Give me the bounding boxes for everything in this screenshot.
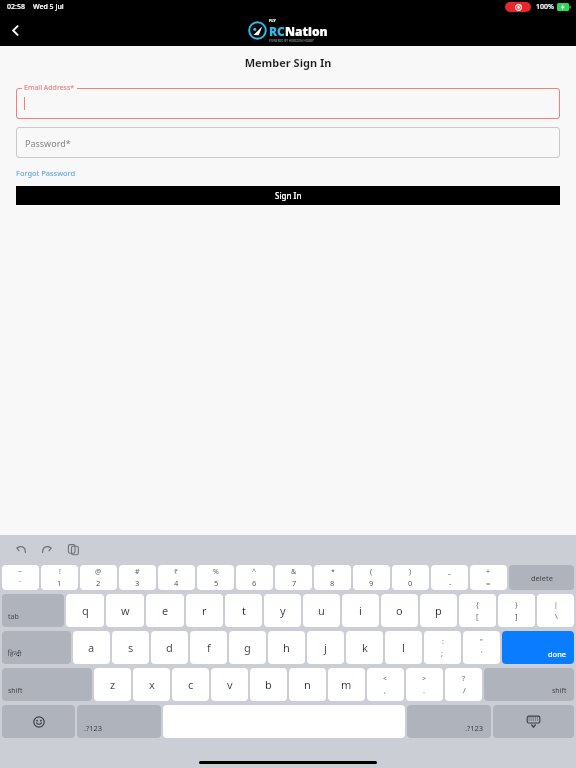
staticText: :	[442, 637, 444, 647]
staticText: x	[149, 677, 155, 692]
button[interactable]: u	[303, 594, 340, 627]
button[interactable]: t	[225, 594, 262, 627]
button[interactable]: #	[119, 565, 156, 590]
button[interactable]: x	[133, 668, 170, 701]
button[interactable]: ₹	[158, 565, 195, 590]
staticText: #	[135, 567, 140, 577]
button[interactable]: Password*	[16, 127, 560, 158]
button[interactable]: d	[151, 631, 188, 664]
staticText: Nation	[285, 23, 328, 39]
button[interactable]: *	[314, 565, 351, 590]
staticText: 2	[96, 578, 101, 588]
button[interactable]: v	[211, 668, 248, 701]
staticText: ]	[515, 611, 518, 621]
button[interactable]: p	[420, 594, 457, 627]
staticText: r	[202, 603, 207, 618]
staticText: .?123	[84, 723, 103, 733]
button[interactable]: :	[424, 631, 461, 664]
staticText: \	[555, 611, 558, 621]
button[interactable]: ?	[445, 668, 482, 701]
button[interactable]: e	[146, 594, 184, 627]
staticText: Wed 5 Jul	[33, 2, 64, 12]
staticText: l	[402, 640, 405, 655]
button[interactable]: tab	[2, 594, 64, 627]
button[interactable]: "	[463, 631, 500, 664]
button[interactable]: %	[197, 565, 234, 590]
staticText: o	[396, 603, 403, 618]
button[interactable]: _	[431, 565, 468, 590]
staticText: Email Address*	[24, 83, 75, 93]
button[interactable]: Undo	[12, 540, 30, 558]
staticText: ,	[384, 685, 387, 695]
button[interactable]: delete	[509, 565, 574, 590]
staticText: t	[242, 603, 246, 618]
button[interactable]: done	[502, 631, 574, 664]
staticText: 5	[214, 578, 219, 588]
button[interactable]: Emoji	[2, 705, 75, 738]
button[interactable]: r	[186, 594, 223, 627]
button[interactable]: f	[190, 631, 227, 664]
button[interactable]: (	[353, 565, 390, 590]
button[interactable]: c	[172, 668, 209, 701]
button[interactable]: k	[346, 631, 383, 664]
button[interactable]: >	[406, 668, 443, 701]
button[interactable]: q	[66, 594, 104, 627]
button[interactable]: g	[229, 631, 266, 664]
button[interactable]: w	[106, 594, 144, 627]
staticText: /	[463, 685, 466, 695]
button[interactable]: Hide keyboard	[493, 705, 574, 738]
button[interactable]: i	[342, 594, 379, 627]
staticText: ₹	[174, 567, 179, 577]
staticText: d	[166, 640, 173, 655]
staticText: shift	[552, 686, 567, 696]
button[interactable]: )	[392, 565, 429, 590]
button[interactable]: |	[537, 594, 574, 627]
button[interactable]: Back	[0, 15, 30, 45]
button[interactable]: a	[73, 631, 110, 664]
button[interactable]: shift	[2, 668, 92, 701]
button[interactable]: m	[328, 668, 365, 701]
staticText: j	[324, 640, 327, 655]
button[interactable]: .?123	[77, 705, 161, 738]
staticText: }	[515, 600, 518, 610]
staticText: 9	[369, 578, 374, 588]
button[interactable]: Paste	[64, 540, 82, 558]
button[interactable]: Sign In	[16, 186, 560, 205]
button[interactable]: z	[94, 668, 131, 701]
button[interactable]: <	[367, 668, 404, 701]
button[interactable]: {	[459, 594, 496, 627]
button[interactable]: b	[250, 668, 287, 701]
button[interactable]: हिन्दी	[2, 631, 71, 664]
staticText: RC	[269, 23, 285, 39]
button[interactable]: }	[498, 594, 535, 627]
staticText: e	[162, 603, 169, 618]
button[interactable]	[16, 88, 560, 119]
button[interactable]: Screen recording	[505, 2, 531, 12]
staticText: "	[480, 637, 483, 647]
staticText: %	[213, 567, 219, 577]
button[interactable]: &	[275, 565, 312, 590]
button[interactable]: l	[385, 631, 422, 664]
button[interactable]: .?123	[407, 705, 491, 738]
button[interactable]: h	[268, 631, 305, 664]
button[interactable]: j	[307, 631, 344, 664]
button[interactable]: shift	[484, 668, 574, 701]
staticText: &	[291, 567, 297, 577]
button[interactable]: n	[289, 668, 326, 701]
button[interactable]: Redo	[38, 540, 56, 558]
button[interactable]: +	[470, 565, 507, 590]
button[interactable]: o	[381, 594, 418, 627]
button[interactable]: ~	[2, 565, 39, 590]
staticText: .	[423, 685, 426, 695]
staticText: FLY	[269, 18, 276, 23]
button[interactable]: s	[112, 631, 149, 664]
button[interactable]: !	[41, 565, 78, 590]
button[interactable]: @	[80, 565, 117, 590]
staticText: _	[448, 567, 452, 577]
staticText: `	[19, 578, 22, 588]
button[interactable]: Forgot Password	[16, 168, 76, 178]
button[interactable]: y	[264, 594, 301, 627]
staticText: z	[110, 677, 116, 692]
button[interactable]: ^	[236, 565, 273, 590]
